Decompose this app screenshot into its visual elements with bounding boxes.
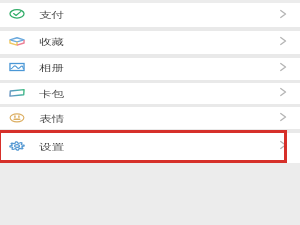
staticText: 相册	[39, 62, 64, 73]
staticText: 卡包	[39, 88, 64, 99]
other: 相册	[9, 60, 25, 74]
button[interactable]	[0, 133, 300, 163]
staticText: 收藏	[39, 36, 64, 47]
button[interactable]	[0, 83, 300, 105]
other: 支付	[9, 7, 25, 21]
button[interactable]	[0, 3, 300, 27]
other: 设置	[9, 139, 25, 153]
staticText: 表情	[39, 113, 64, 124]
other: 卡包	[9, 86, 25, 100]
button[interactable]	[0, 107, 300, 129]
other: 表情	[9, 111, 25, 125]
button[interactable]	[0, 31, 300, 54]
staticText: 支付	[39, 9, 64, 20]
other: 设置 highlighted	[0, 130, 287, 163]
other: 收藏	[9, 34, 25, 48]
staticText: 设置	[39, 141, 64, 152]
button[interactable]	[0, 58, 300, 81]
